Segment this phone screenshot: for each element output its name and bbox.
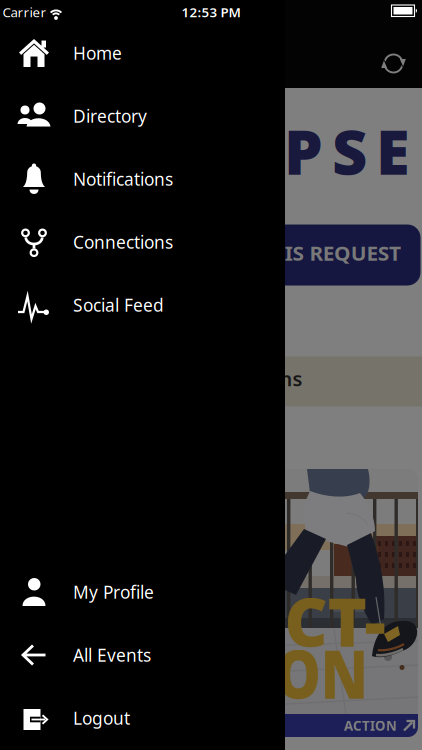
- staticText: Directory: [73, 104, 147, 127]
- button[interactable]: Directory: [0, 84, 285, 147]
- staticText: Notifications: [73, 167, 173, 190]
- staticText: ON: [267, 629, 376, 717]
- button[interactable]: Logout: [0, 686, 285, 749]
- button[interactable]: Connections: [0, 210, 285, 273]
- button[interactable]: My Profile: [0, 560, 285, 623]
- staticText: IS REQUEST: [291, 241, 395, 266]
- button[interactable]: All Events: [0, 623, 285, 686]
- staticText: PSE: [284, 110, 410, 192]
- button[interactable]: Social Feed: [0, 273, 285, 336]
- button[interactable]: Home: [0, 21, 285, 84]
- button[interactable]: Refresh: [0, 0, 422, 750]
- button[interactable]: IS REQUEST: [1, 224, 420, 285]
- staticText: ACTION: [344, 717, 397, 734]
- staticText: All Events: [73, 643, 151, 666]
- staticText: Connections: [73, 230, 173, 253]
- staticText: Carrier: [2, 3, 46, 21]
- staticText: Logout: [73, 706, 130, 729]
- staticText: My Profile: [73, 580, 154, 603]
- staticText: Home: [73, 41, 122, 64]
- button[interactable]: Notifications: [0, 147, 285, 210]
- staticText: ons: [267, 365, 302, 392]
- staticText: CT-: [284, 577, 385, 665]
- staticText: Social Feed: [73, 293, 164, 316]
- staticText: 12:53 PM: [181, 3, 240, 21]
- button[interactable]: CT-: [4, 469, 418, 737]
